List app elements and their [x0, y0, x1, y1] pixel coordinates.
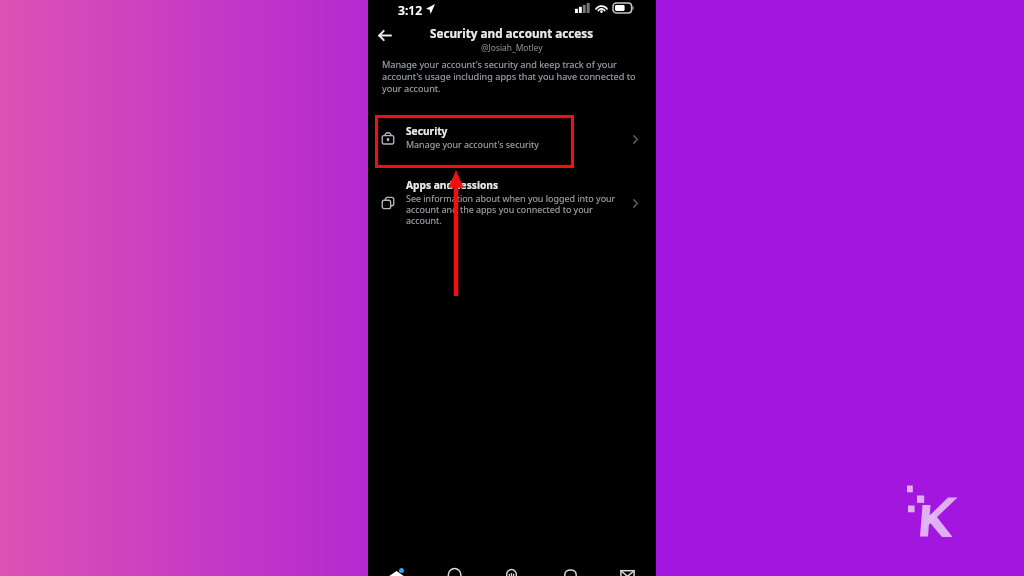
staticText: Manage your account's security [406, 138, 539, 150]
staticText: See information about when you logged in… [406, 192, 625, 226]
staticText: @Josiah_Motley [481, 42, 543, 53]
staticText: Manage your account's security and keep … [382, 58, 640, 94]
button[interactable]: Search [425, 550, 482, 576]
button[interactable]: Spaces [482, 550, 540, 576]
button[interactable]: Security [368, 124, 656, 165]
staticText: Apps and sessions [406, 178, 499, 192]
staticText: Security [406, 124, 448, 138]
button[interactable]: Notifications [540, 550, 598, 576]
staticText: 3:12 [398, 2, 423, 19]
staticText: Security and account access [430, 25, 594, 41]
button[interactable]: Back [372, 26, 394, 48]
button[interactable]: Apps and sessions [368, 178, 656, 232]
button[interactable]: Messages [598, 550, 656, 576]
button[interactable]: Home [368, 550, 425, 576]
